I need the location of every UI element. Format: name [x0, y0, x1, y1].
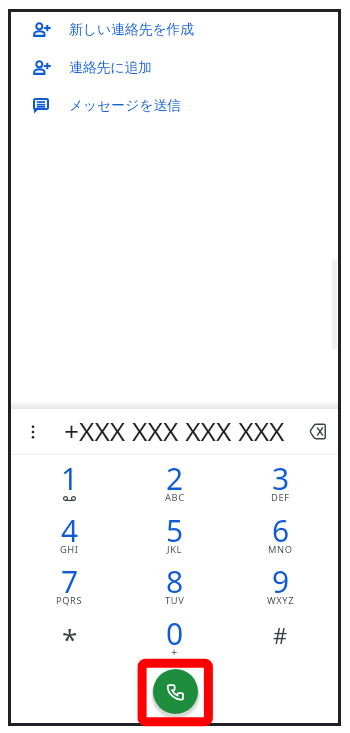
button[interactable]: 連絡先に追加 [11, 49, 339, 86]
staticText: ABC [165, 491, 185, 504]
staticText: 9 [272, 561, 290, 602]
staticText: PQRS [56, 594, 83, 607]
button[interactable]: 7 [17, 559, 122, 611]
button[interactable]: 8 [122, 559, 227, 611]
staticText: メッセージを送信 [69, 97, 181, 114]
staticText: 0 [166, 613, 184, 654]
staticText: * [62, 620, 78, 658]
button[interactable]: 新しい連絡先を作成 [11, 11, 339, 48]
button[interactable]: * [17, 611, 122, 663]
button[interactable]: 2 [122, 456, 227, 508]
staticText: 7 [61, 561, 79, 602]
button[interactable]: 1 [17, 456, 122, 508]
staticText: 1 [61, 458, 79, 499]
staticText: 5 [166, 510, 184, 551]
button[interactable]: 9 [228, 559, 333, 611]
staticText: 4 [61, 510, 79, 551]
staticText: 3 [272, 458, 290, 499]
staticText: WXYZ [267, 594, 295, 607]
staticText: JKL [167, 543, 182, 556]
staticText: 6 [272, 510, 290, 551]
button[interactable]: 0 [122, 611, 227, 663]
staticText: DEF [271, 491, 290, 504]
staticText: + [171, 644, 178, 659]
button[interactable]: 3 [228, 456, 333, 508]
button[interactable]: 5 [122, 508, 227, 560]
button[interactable]: 4 [17, 508, 122, 560]
staticText: TUV [165, 594, 185, 607]
staticText: +XXX XXX XXX XXX [64, 413, 285, 449]
button[interactable]: Call [153, 669, 198, 714]
staticText: 2 [166, 458, 184, 499]
staticText: GHI [60, 543, 79, 556]
button[interactable]: 6 [228, 508, 333, 560]
button[interactable]: # [228, 611, 333, 663]
staticText: # [273, 620, 288, 650]
button[interactable]: メッセージを送信 [11, 87, 339, 124]
staticText: 新しい連絡先を作成 [69, 21, 195, 38]
staticText: MNO [268, 543, 293, 556]
button[interactable]: More options [16, 415, 49, 448]
button[interactable]: Backspace [301, 415, 334, 448]
staticText: 8 [166, 561, 184, 602]
staticText: 連絡先に追加 [69, 59, 153, 76]
